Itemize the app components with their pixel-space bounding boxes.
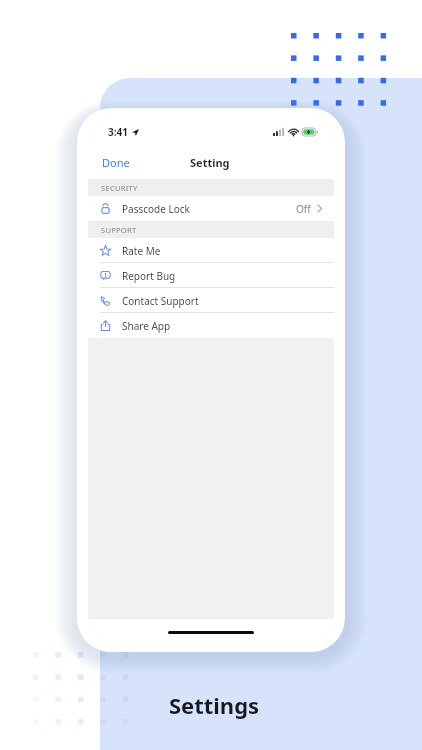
staticText: Settings <box>6 690 422 720</box>
staticText: SECURITY <box>101 183 138 193</box>
staticText: Contact Support <box>122 294 199 308</box>
staticText: Done <box>102 155 130 170</box>
staticText: Passcode Lock <box>122 202 190 216</box>
staticText: Rate Me <box>122 244 161 258</box>
staticText: Report Bug <box>122 269 176 283</box>
staticText: Share App <box>122 319 171 333</box>
button[interactable]: Contact Support <box>88 288 334 313</box>
button[interactable]: Passcode Lock <box>88 196 334 221</box>
staticText: SUPPORT <box>101 225 137 235</box>
staticText: Off <box>296 202 311 216</box>
button[interactable]: Done <box>88 149 144 176</box>
button[interactable]: Rate Me <box>88 238 334 263</box>
staticText: 3:41 <box>108 125 128 139</box>
button[interactable]: Report Bug <box>88 263 334 288</box>
button[interactable]: Share App <box>88 313 334 338</box>
staticText: Setting <box>190 155 230 170</box>
